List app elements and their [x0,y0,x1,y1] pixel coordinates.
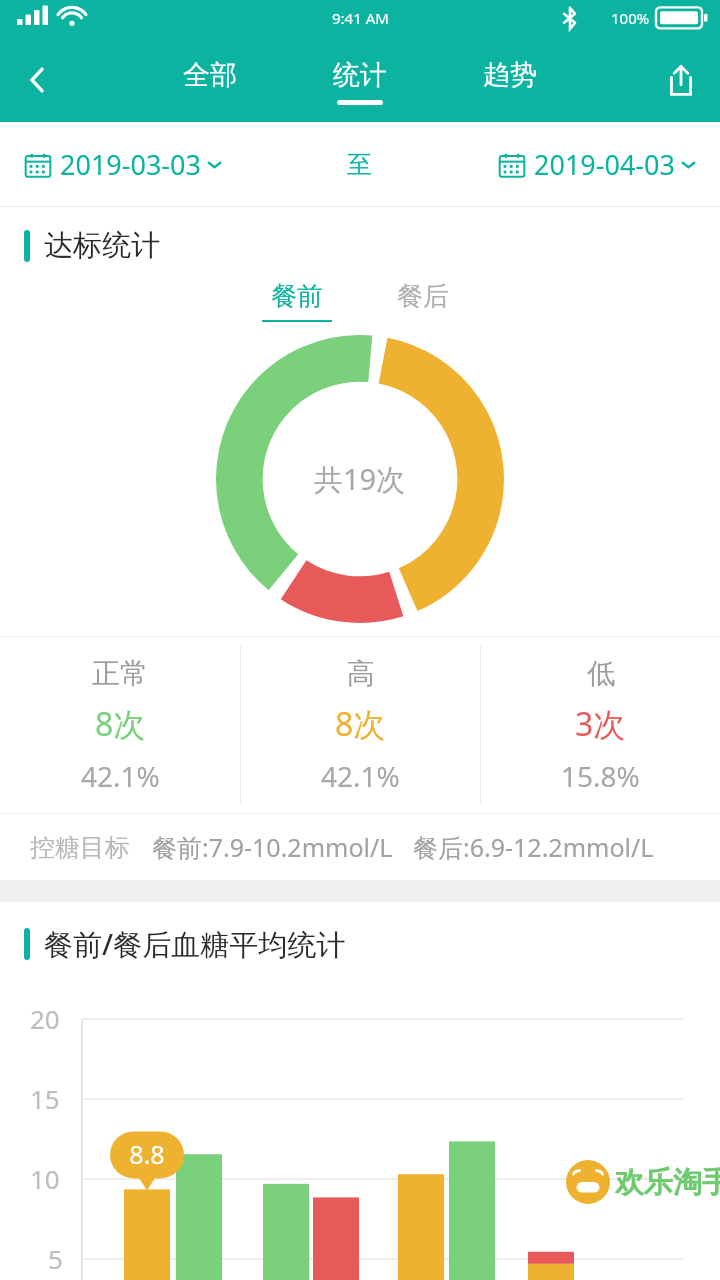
staticText: 42.1% [81,757,160,795]
button[interactable]: 餐后 [384,280,462,322]
button[interactable]: Back [0,38,74,122]
staticText: 5 [48,1241,63,1276]
staticText: 至 [347,149,372,180]
button[interactable]: 2019-04-03 [498,146,696,183]
staticText: 15 [30,1081,60,1116]
staticText: 高 [347,656,375,691]
button[interactable]: 统计 [285,38,435,122]
staticText: 餐前 [271,280,323,313]
staticText: 共19次 [314,459,406,499]
staticText: 10 [30,1161,60,1196]
staticText: 15.8% [561,757,640,795]
staticText: 趋势 [483,58,537,92]
button[interactable]: 低 [481,637,720,813]
staticText: 3次 [575,702,626,746]
button[interactable]: 趋势 [435,38,585,122]
staticText: 8次 [335,702,386,746]
staticText: 达标统计 [44,227,160,264]
button[interactable]: 高 [241,637,480,813]
staticText: 统计 [333,58,387,92]
staticText: 2019-03-03 [60,146,201,183]
staticText: 餐后 [397,280,449,313]
staticText: 全部 [183,58,237,92]
button[interactable]: 2019-03-03 [24,146,222,183]
staticText: 控糖目标 [30,832,130,863]
staticText: 餐后:6.9-12.2mmol/L [413,830,654,864]
staticText: 8.8 [124,1137,170,1171]
staticText: 欢乐淘手游 [615,1164,720,1201]
staticText: 餐前:7.9-10.2mmol/L [152,830,393,864]
button[interactable]: 正常 [0,637,240,813]
staticText: 100% [611,8,650,28]
staticText: 2019-04-03 [534,146,675,183]
staticText: 42.1% [321,757,400,795]
staticText: 9:41 AM [332,8,389,28]
staticText: 20 [30,1001,60,1036]
staticText: 8次 [95,702,146,746]
button[interactable]: Share [642,38,720,122]
staticText: 餐前/餐后血糖平均统计 [44,924,346,964]
staticText: 低 [587,656,615,691]
staticText: 正常 [92,656,148,691]
button[interactable]: 餐前 [258,280,336,322]
button[interactable]: 全部 [135,38,285,122]
